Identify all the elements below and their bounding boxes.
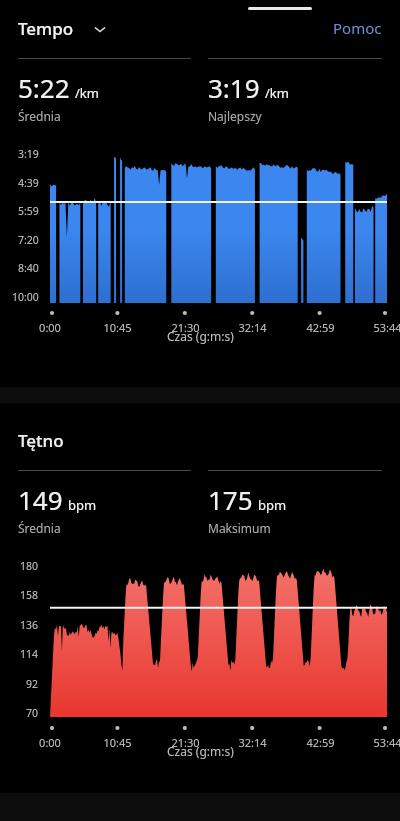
button[interactable]: 5:22 (18, 58, 191, 124)
staticText: 4:39 (18, 176, 39, 190)
staticText: 158 (20, 588, 39, 602)
staticText: 5:22 (18, 70, 70, 105)
staticText: 32:14 (238, 320, 267, 335)
staticText: bpm (258, 496, 287, 514)
staticText: 42:59 (306, 735, 335, 750)
button[interactable]: 149 (18, 470, 191, 536)
staticText: 175 (208, 482, 253, 517)
staticText: 32:14 (238, 735, 267, 750)
staticText: 180 (20, 559, 39, 573)
staticText: 3:19 (208, 70, 260, 105)
staticText: 10:45 (103, 735, 132, 750)
staticText: /km (75, 84, 99, 102)
staticText: 8:40 (18, 261, 39, 275)
staticText: 136 (20, 618, 39, 632)
staticText: Najlepszy (208, 108, 262, 124)
staticText: 5:59 (18, 204, 39, 218)
staticText: 70 (26, 706, 39, 720)
button[interactable]: Tętno (0, 427, 82, 454)
staticText: 92 (26, 677, 39, 691)
staticText: 3:19 (18, 147, 39, 161)
staticText: 0:00 (39, 735, 61, 750)
staticText: 10:00 (12, 290, 39, 304)
staticText: 53:44 (373, 320, 400, 335)
staticText: 42:59 (306, 320, 335, 335)
staticText: 53:44 (373, 735, 400, 750)
staticText: 0:00 (39, 320, 61, 335)
staticText: Średnia (18, 108, 61, 124)
staticText: Pomoc (333, 18, 382, 38)
staticText: 149 (18, 482, 63, 517)
staticText: Tempo (18, 17, 74, 40)
staticText: 114 (20, 647, 39, 661)
button[interactable]: Pomoc (315, 14, 400, 42)
staticText: 21:30 (171, 735, 200, 750)
staticText: Maksimum (208, 520, 271, 536)
staticText: /km (265, 84, 289, 102)
button[interactable]: Tempo (0, 15, 116, 42)
staticText: 21:30 (171, 320, 200, 335)
button[interactable]: 3:19 (208, 58, 382, 124)
staticText: Średnia (18, 520, 61, 536)
staticText: 10:45 (103, 320, 132, 335)
staticText: bpm (68, 496, 97, 514)
staticText: Tętno (18, 429, 64, 452)
staticText: Czas (g:m:s) (167, 328, 234, 344)
button[interactable]: 175 (208, 470, 382, 536)
staticText: 7:20 (18, 233, 39, 247)
staticText: Czas (g:m:s) (167, 743, 234, 759)
